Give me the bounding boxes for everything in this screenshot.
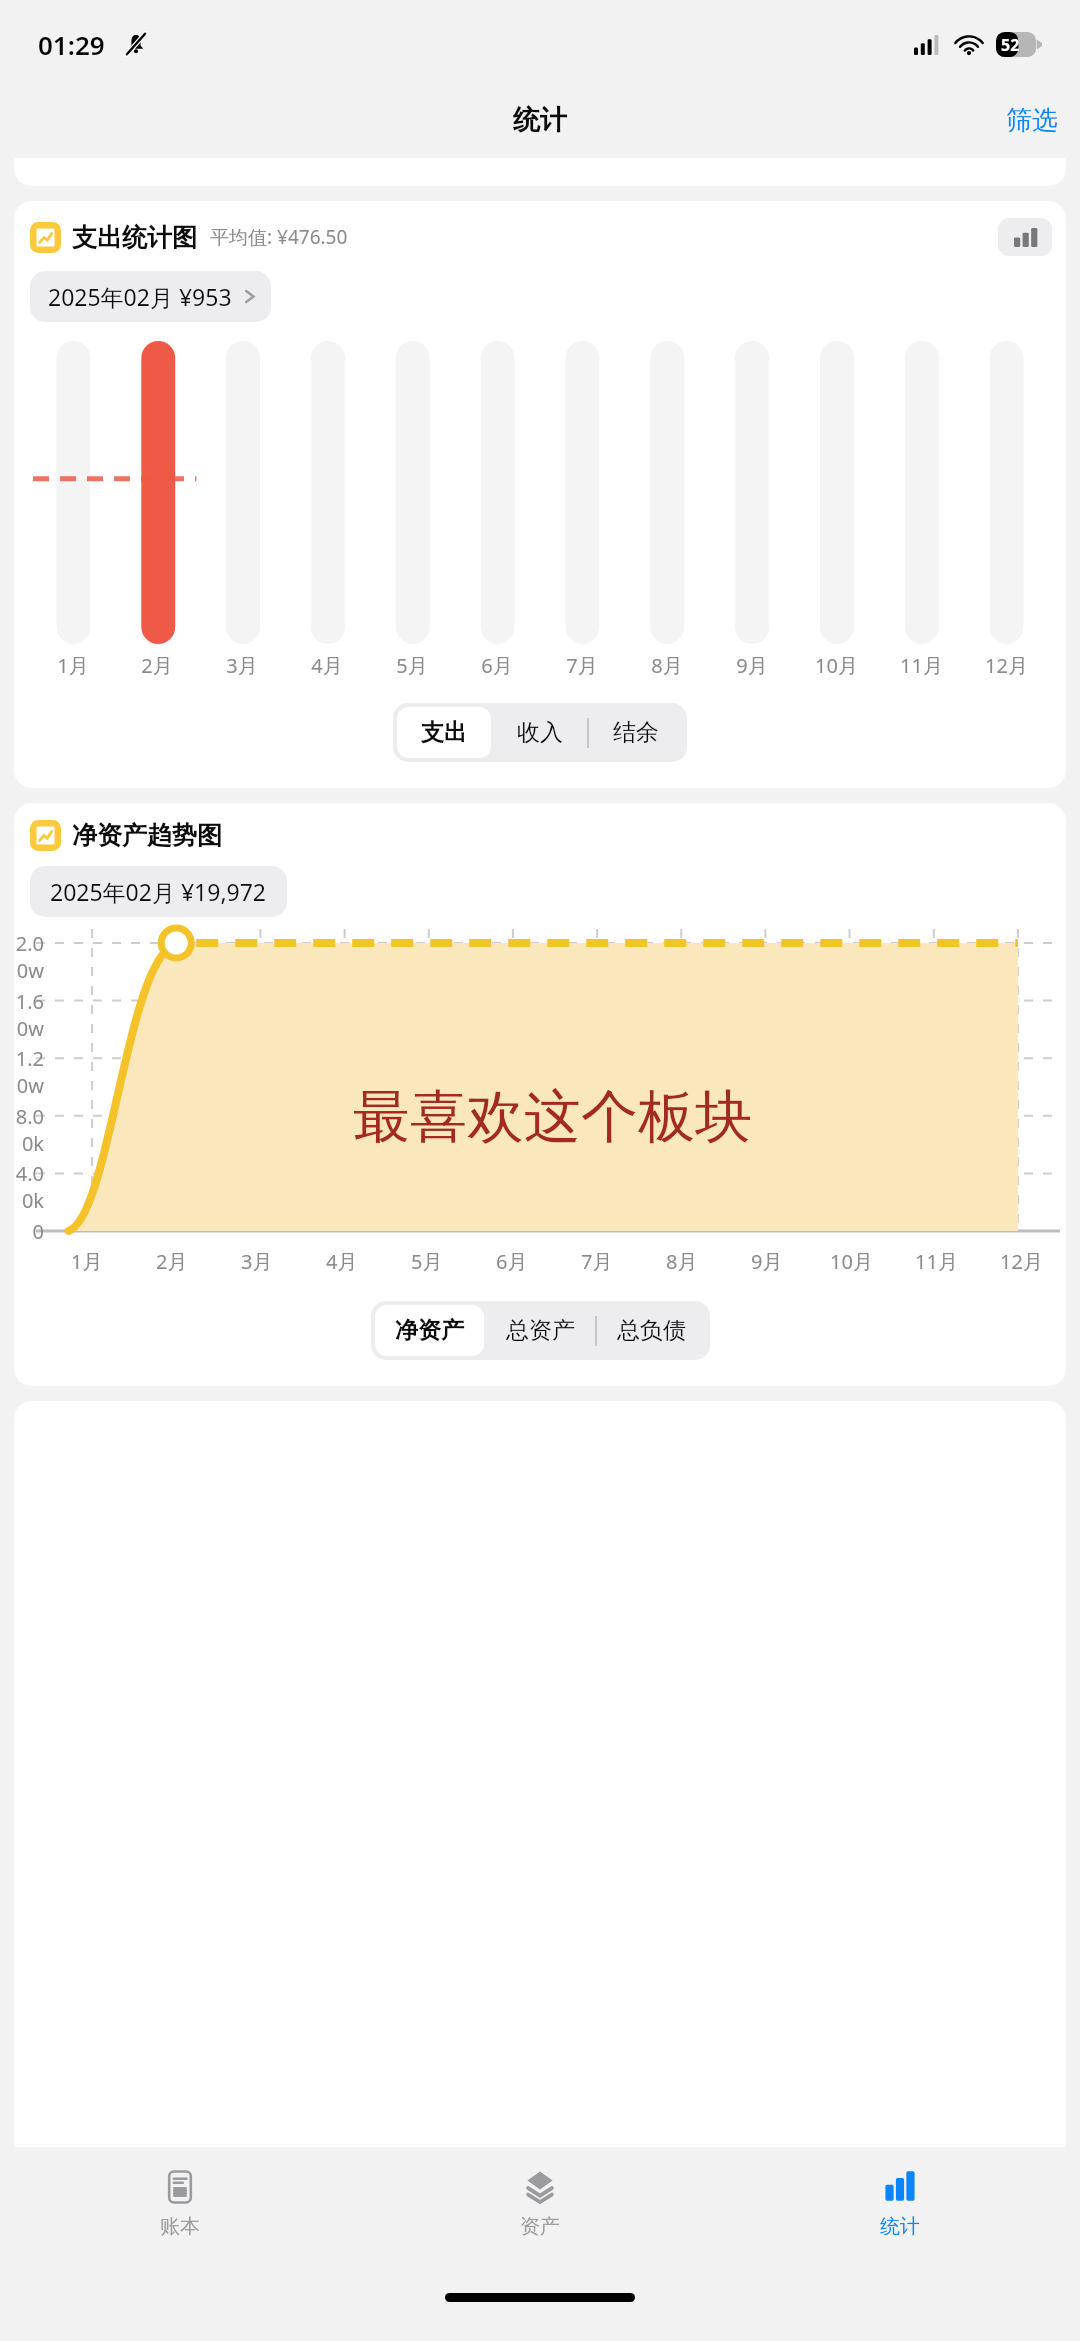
- staticText: 1月: [57, 652, 89, 679]
- staticText: 总负债: [617, 1316, 686, 1345]
- staticText: 12月: [985, 652, 1028, 679]
- staticText: 52: [1001, 34, 1020, 56]
- staticText: 9月: [736, 652, 768, 679]
- button[interactable]: 统计: [720, 2147, 1080, 2279]
- staticText: 11月: [900, 652, 943, 679]
- staticText: 4月: [311, 652, 343, 679]
- staticText: 统计: [513, 103, 567, 137]
- button[interactable]: 结余: [589, 707, 683, 758]
- button[interactable]: 筛选: [992, 96, 1072, 145]
- staticText: 最喜欢这个板块: [353, 1081, 752, 1153]
- staticText: 5月: [411, 1248, 443, 1275]
- staticText: 结余: [613, 718, 659, 747]
- staticText: 8.00k: [14, 1103, 44, 1157]
- staticText: 8月: [651, 652, 683, 679]
- staticText: 10月: [830, 1248, 873, 1275]
- staticText: 收入: [517, 718, 563, 747]
- staticText: 6月: [496, 1248, 528, 1275]
- button[interactable]: 账本: [0, 2147, 360, 2279]
- staticText: 2月: [156, 1248, 188, 1275]
- button[interactable]: 2025年02月 ¥19,972: [30, 866, 287, 917]
- staticText: 4.00k: [14, 1160, 44, 1214]
- staticText: 1.60w: [14, 988, 44, 1042]
- button[interactable]: Switch chart type: [998, 218, 1052, 256]
- staticText: 4月: [326, 1248, 358, 1275]
- button[interactable]: 总负债: [597, 1305, 706, 1356]
- staticText: 0: [14, 1218, 44, 1245]
- staticText: 2月: [141, 652, 173, 679]
- staticText: 01:29: [38, 27, 105, 62]
- staticText: 资产: [520, 2214, 560, 2239]
- button[interactable]: 支出: [397, 707, 491, 758]
- staticText: 2025年02月 ¥19,972: [50, 876, 267, 907]
- staticText: 筛选: [1006, 104, 1058, 137]
- staticText: 1月: [71, 1248, 103, 1275]
- staticText: 6月: [481, 652, 513, 679]
- staticText: 7月: [581, 1248, 613, 1275]
- staticText: 7月: [566, 652, 598, 679]
- staticText: 支出: [421, 718, 467, 747]
- staticText: 净资产趋势图: [72, 820, 222, 851]
- staticText: 3月: [241, 1248, 273, 1275]
- staticText: 支出统计图: [72, 222, 197, 253]
- staticText: 1.20w: [14, 1045, 44, 1099]
- button[interactable]: 净资产: [375, 1305, 484, 1356]
- staticText: 2.00w: [14, 930, 44, 984]
- staticText: 平均值: ¥476.50: [210, 224, 348, 250]
- staticText: 10月: [815, 652, 858, 679]
- staticText: 12月: [1000, 1248, 1043, 1275]
- button[interactable]: 资产: [360, 2147, 720, 2279]
- button[interactable]: 总资产: [486, 1305, 595, 1356]
- staticText: 账本: [160, 2214, 200, 2239]
- button[interactable]: 收入: [493, 707, 587, 758]
- staticText: 8月: [666, 1248, 698, 1275]
- staticText: 净资产: [395, 1316, 464, 1345]
- button[interactable]: 2025年02月 ¥953: [30, 271, 271, 322]
- staticText: 9月: [751, 1248, 783, 1275]
- staticText: 2025年02月 ¥953: [48, 281, 232, 312]
- staticText: 3月: [226, 652, 258, 679]
- staticText: 统计: [880, 2214, 920, 2239]
- staticText: 11月: [915, 1248, 958, 1275]
- staticText: 总资产: [506, 1316, 575, 1345]
- staticText: 5月: [396, 652, 428, 679]
